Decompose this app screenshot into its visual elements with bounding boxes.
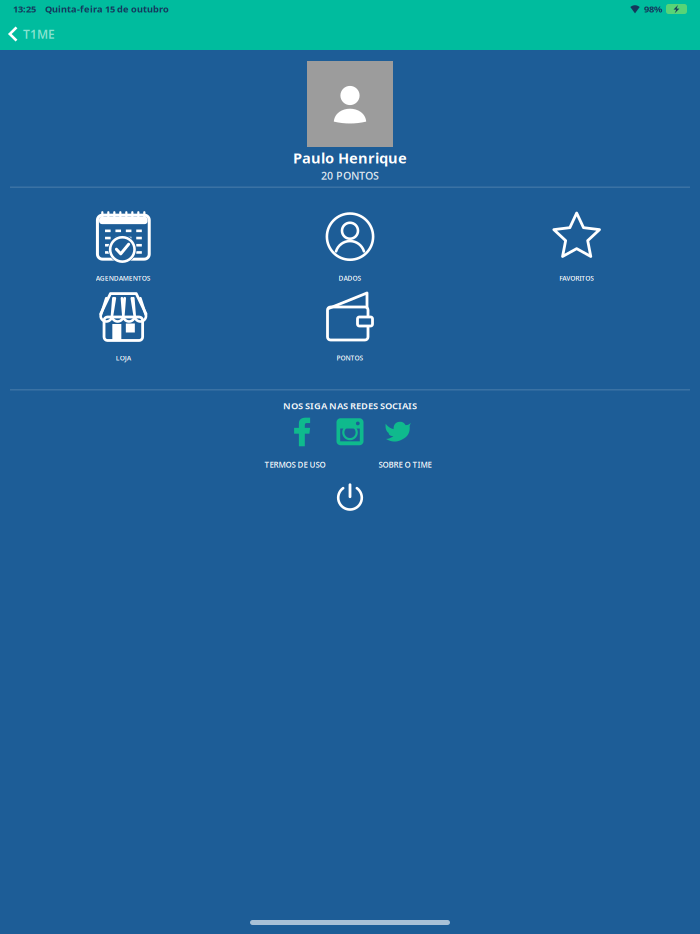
staticText: Paulo Henrique [293,148,407,167]
staticText: TERMOS DE USO [264,459,325,470]
staticText: DADOS [338,274,361,282]
button[interactable]: PONTOS [237,286,463,365]
button[interactable]: Instagram [326,416,374,448]
button[interactable]: AGENDAMENTOS [10,207,237,285]
staticText: 98% [644,3,662,15]
staticText: NOS SIGA NAS REDES SOCIAIS [283,399,417,412]
button[interactable]: Twitter [374,416,422,448]
button[interactable]: T1ME [0,20,67,48]
staticText: SOBRE O TIME [378,459,431,470]
staticText: T1ME [23,26,55,42]
button[interactable]: TERMOS DE USO [240,458,350,472]
staticText: 13:25 [13,3,36,15]
button[interactable]: LOJA [10,286,237,365]
button[interactable]: Sair [328,481,372,513]
button[interactable]: SOBRE O TIME [350,458,460,472]
staticText: Quinta-feira 15 de outubro [45,3,169,15]
staticText: LOJA [116,353,131,362]
staticText: 20 PONTOS [321,168,379,183]
staticText: PONTOS [336,353,363,362]
button[interactable]: Facebook [278,416,326,448]
staticText: AGENDAMENTOS [96,274,151,282]
button[interactable]: DADOS [237,207,463,285]
staticText: FAVORITOS [559,274,594,282]
button[interactable]: FAVORITOS [463,207,690,285]
